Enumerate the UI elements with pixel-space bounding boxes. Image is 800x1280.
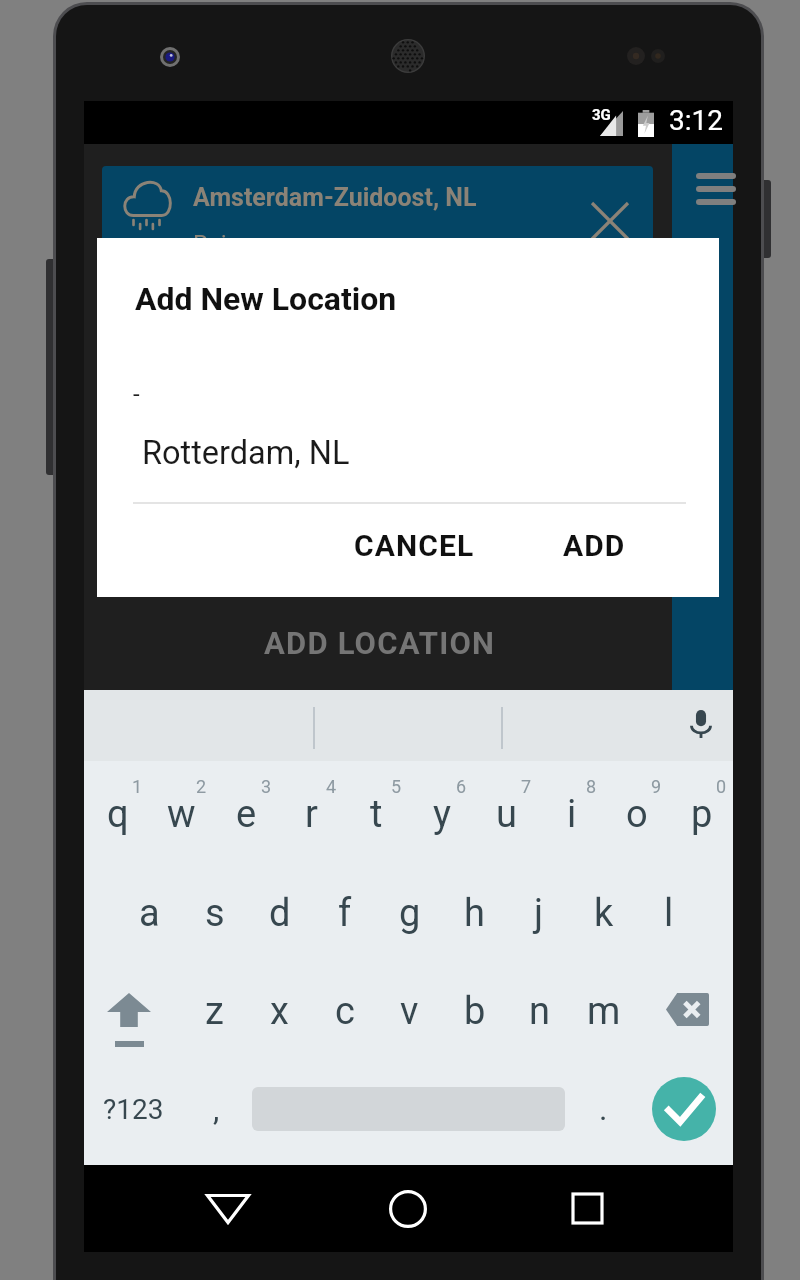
staticText: u xyxy=(496,792,517,837)
staticText: v xyxy=(400,989,419,1034)
button[interactable]: Menu xyxy=(685,162,733,216)
button[interactable]: b xyxy=(442,963,507,1059)
button[interactable]: d xyxy=(247,865,312,961)
staticText: 6 xyxy=(456,776,467,797)
button[interactable]: CANCEL xyxy=(342,514,486,576)
button[interactable]: v xyxy=(377,963,442,1059)
button[interactable]: x xyxy=(247,963,312,1059)
staticText: x xyxy=(270,989,289,1034)
button[interactable]: Amsterdam-Zuidoost, NL xyxy=(102,166,653,290)
staticText: d xyxy=(269,891,291,936)
button[interactable]: Voice input xyxy=(669,690,733,761)
button[interactable]: 2 xyxy=(149,763,214,862)
staticText: z xyxy=(205,989,224,1034)
button[interactable]: 8 xyxy=(539,763,604,862)
staticText: Rain xyxy=(193,230,240,258)
staticText: f xyxy=(338,891,352,936)
staticText: 1 xyxy=(132,776,143,797)
staticText: i xyxy=(567,792,577,837)
staticText: ?123 xyxy=(103,1093,164,1126)
staticText: c xyxy=(335,989,355,1034)
staticText: , xyxy=(213,1090,220,1128)
button[interactable]: 1 xyxy=(85,763,150,862)
button[interactable]: 5 xyxy=(344,763,409,862)
staticText: g xyxy=(399,891,421,936)
staticText: 3 xyxy=(261,776,272,797)
button[interactable]: n xyxy=(507,963,572,1059)
staticText: q xyxy=(107,792,129,837)
staticText: 4 xyxy=(326,776,337,797)
button[interactable]: ADD LOCATION xyxy=(84,599,672,690)
staticText: CANCEL xyxy=(354,528,475,563)
button[interactable]: Shift xyxy=(84,963,182,1059)
staticText: m xyxy=(587,989,621,1034)
button[interactable]: Back xyxy=(178,1165,278,1252)
staticText: o xyxy=(626,792,648,837)
button[interactable]: h xyxy=(442,865,507,961)
staticText: k xyxy=(594,891,614,936)
staticText: Rotterdam, NL xyxy=(142,434,350,472)
staticText: 0 xyxy=(716,776,727,797)
button[interactable]: s xyxy=(182,865,247,961)
button[interactable]: l xyxy=(636,865,701,961)
button[interactable]: 7 xyxy=(474,763,539,862)
staticText: r xyxy=(305,792,318,837)
button[interactable]: 6 xyxy=(409,763,474,862)
button[interactable]: , xyxy=(184,1061,248,1157)
staticText: b xyxy=(464,989,486,1034)
staticText: 3G xyxy=(592,106,611,124)
button[interactable]: k xyxy=(571,865,636,961)
staticText: p xyxy=(691,792,713,837)
staticText: j xyxy=(534,891,544,936)
staticText: t xyxy=(370,792,383,837)
staticText: a xyxy=(139,891,160,936)
staticText: 8 xyxy=(586,776,597,797)
staticText: e xyxy=(236,792,257,837)
staticText: ADD xyxy=(563,528,626,563)
staticText: y xyxy=(433,792,451,837)
staticText: 3:12 xyxy=(669,104,723,137)
button[interactable]: c xyxy=(312,963,377,1059)
button[interactable]: a xyxy=(117,865,182,961)
button[interactable]: j xyxy=(506,865,571,961)
staticText: 2 xyxy=(196,776,207,797)
staticText: ADD LOCATION xyxy=(264,625,496,661)
staticText: 9 xyxy=(651,776,662,797)
button[interactable]: 0 xyxy=(669,763,734,862)
button[interactable]: g xyxy=(377,865,442,961)
staticText: w xyxy=(167,792,196,837)
staticText: . xyxy=(599,1090,608,1128)
button[interactable]: . xyxy=(571,1061,635,1157)
staticText: n xyxy=(529,989,550,1034)
button[interactable]: Enter xyxy=(652,1077,716,1141)
staticText: 5 xyxy=(391,776,402,797)
button[interactable]: 9 xyxy=(604,763,669,862)
button[interactable]: z xyxy=(182,963,247,1059)
staticText: h xyxy=(464,891,485,936)
staticText: 7 xyxy=(521,776,532,797)
button[interactable]: Recent apps xyxy=(537,1165,637,1252)
staticText: s xyxy=(205,891,225,936)
button[interactable]: ?123 xyxy=(84,1061,182,1157)
button[interactable]: Backspace xyxy=(649,963,733,1059)
staticText: - xyxy=(133,380,140,408)
staticText: Add New Location xyxy=(135,280,397,318)
button[interactable]: ADD xyxy=(542,514,647,576)
button[interactable]: 3 xyxy=(214,763,279,862)
button[interactable]: Home xyxy=(358,1165,458,1252)
staticText: Amsterdam-Zuidoost, NL xyxy=(193,183,477,212)
button[interactable]: 4 xyxy=(279,763,344,862)
staticText: l xyxy=(664,891,674,936)
button[interactable]: f xyxy=(312,865,377,961)
button[interactable]: m xyxy=(571,963,636,1059)
